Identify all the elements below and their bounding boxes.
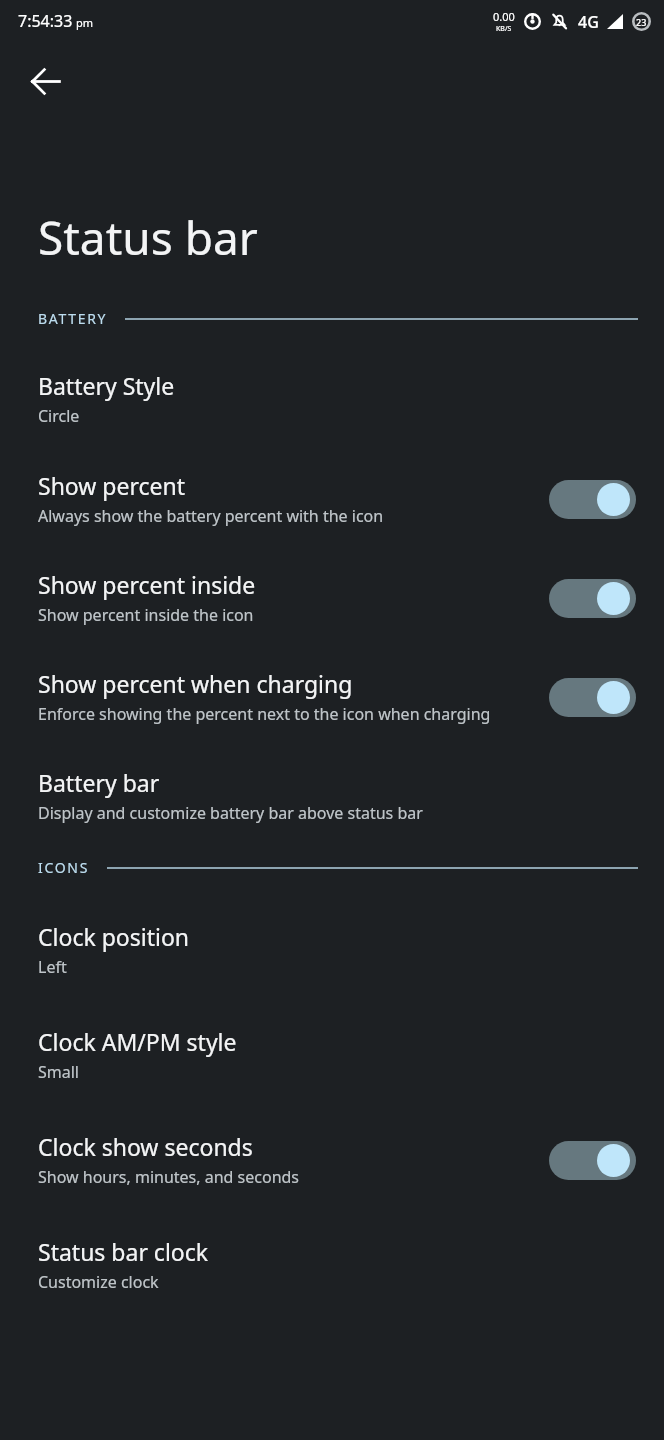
- staticText: pm: [76, 15, 94, 30]
- staticText: Circle: [38, 405, 80, 427]
- staticText: 7:54:33: [18, 10, 73, 32]
- staticText: Battery bar: [38, 767, 160, 798]
- staticText: Show percent: [38, 470, 186, 501]
- button[interactable]: Battery Style: [0, 348, 664, 449]
- staticText: Battery Style: [38, 370, 175, 401]
- staticText: Small: [38, 1061, 79, 1083]
- button[interactable]: Toggle switch: [546, 674, 638, 720]
- staticText: 0.00: [493, 9, 515, 24]
- button[interactable]: Clock show seconds: [0, 1109, 664, 1214]
- button[interactable]: Status bar clock: [0, 1214, 664, 1315]
- staticText: Show percent inside: [38, 569, 256, 600]
- staticText: 4G: [578, 11, 599, 33]
- staticText: ICONS: [38, 858, 90, 877]
- staticText: Clock show seconds: [38, 1131, 253, 1162]
- button[interactable]: Clock AM/PM style: [0, 1004, 664, 1109]
- staticText: BATTERY: [38, 309, 108, 328]
- button[interactable]: Clock position: [0, 899, 664, 1004]
- button[interactable]: Toggle switch: [546, 1137, 638, 1183]
- button[interactable]: Battery bar: [0, 746, 664, 846]
- staticText: Always show the battery percent with the…: [38, 505, 384, 527]
- staticText: Enforce showing the percent next to the …: [38, 703, 491, 725]
- staticText: Left: [38, 956, 67, 978]
- button[interactable]: Toggle switch: [546, 575, 638, 621]
- button[interactable]: Toggle switch: [546, 476, 638, 522]
- staticText: KB/S: [496, 24, 512, 34]
- staticText: Clock AM/PM style: [38, 1026, 237, 1057]
- staticText: Clock position: [38, 921, 190, 952]
- staticText: Status bar: [38, 206, 258, 269]
- button[interactable]: Show percent when charging: [0, 647, 664, 746]
- button[interactable]: Show percent inside: [0, 548, 664, 647]
- staticText: Show hours, minutes, and seconds: [38, 1166, 300, 1188]
- staticText: Show percent when charging: [38, 668, 353, 699]
- button[interactable]: Back: [13, 49, 77, 113]
- staticText: Customize clock: [38, 1271, 159, 1293]
- button[interactable]: Show percent: [0, 449, 664, 548]
- staticText: 23: [636, 16, 647, 28]
- staticText: Status bar clock: [38, 1236, 209, 1267]
- staticText: Show percent inside the icon: [38, 604, 254, 626]
- staticText: Display and customize battery bar above …: [38, 802, 423, 824]
